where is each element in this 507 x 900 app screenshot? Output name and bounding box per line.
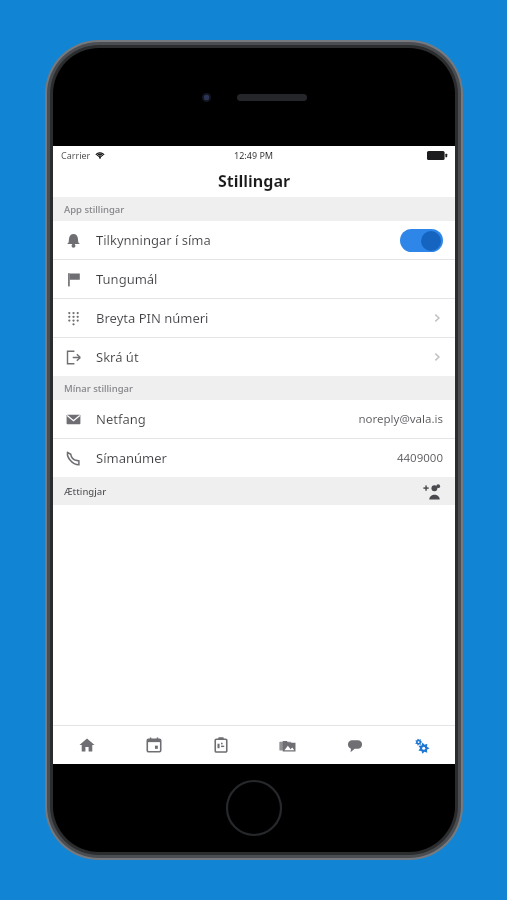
staticText: App stillingar [64, 203, 125, 216]
button[interactable]: Símanúmer [53, 439, 455, 477]
button[interactable]: Stillingar [388, 726, 455, 764]
button[interactable]: Tilkynningar í síma [53, 221, 455, 259]
button[interactable]: Skýrslur [187, 726, 254, 764]
button[interactable]: Tilkynningar kveikt [400, 229, 443, 252]
button[interactable]: Skilaboð [321, 726, 388, 764]
button[interactable]: Tungumál [53, 260, 455, 298]
staticText: Skrá út [96, 348, 139, 366]
staticText: Breyta PIN númeri [96, 309, 209, 327]
staticText: Mínar stillingar [64, 382, 133, 395]
staticText: Tungumál [96, 270, 158, 288]
button[interactable]: Netfang [53, 400, 455, 438]
button[interactable]: Heim [53, 726, 120, 764]
button[interactable]: Myndir [254, 726, 321, 764]
staticText: 4409000 [396, 450, 443, 466]
staticText: Stillingar [218, 170, 291, 192]
staticText: 12:49 PM [234, 149, 274, 161]
staticText: Netfang [96, 410, 146, 428]
button[interactable]: Dagatal [120, 726, 187, 764]
staticText: Carrier [61, 149, 91, 161]
button[interactable]: Skrá út [53, 338, 455, 376]
staticText: Ættingjar [64, 485, 107, 498]
button[interactable]: Bæta við ættingja [419, 478, 445, 504]
staticText: noreply@vala.is [358, 411, 443, 427]
staticText: Símanúmer [96, 449, 167, 467]
button[interactable]: Breyta PIN númeri [53, 299, 455, 337]
staticText: Tilkynningar í síma [96, 231, 211, 249]
